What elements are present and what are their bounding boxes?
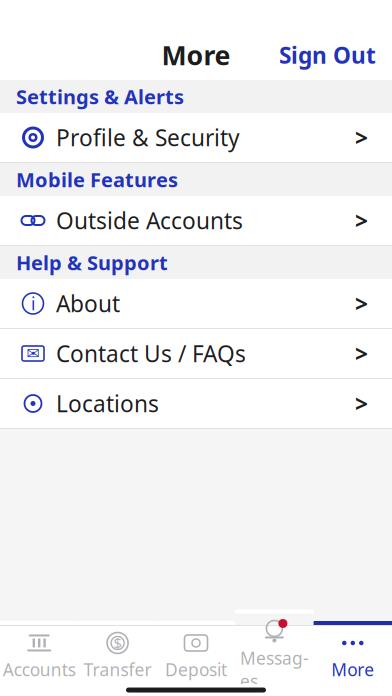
staticText: > [355, 122, 368, 153]
button[interactable]: Messages [235, 626, 314, 684]
staticText: Transfer [84, 658, 152, 681]
button[interactable]: Deposit [157, 626, 235, 684]
staticText: Deposit [165, 658, 227, 681]
button[interactable]: Sign Out [263, 32, 392, 78]
button[interactable]: ✉ [0, 329, 392, 379]
staticText: Settings & Alerts [16, 83, 184, 110]
staticText: Accounts [3, 658, 76, 681]
staticText: > [355, 205, 368, 236]
staticText: More [161, 37, 230, 73]
staticText: Messages [240, 646, 309, 692]
staticText: Help & Support [16, 249, 168, 276]
staticText: > [355, 288, 368, 319]
staticText: $ [114, 633, 122, 653]
button[interactable]: More [314, 626, 392, 684]
staticText: > [355, 338, 368, 369]
staticText: Mobile Features [16, 166, 178, 193]
button[interactable]: i [0, 279, 392, 329]
button[interactable]: Outside Accounts [0, 196, 392, 246]
staticText: i [31, 292, 35, 315]
staticText: ✉ [26, 344, 39, 363]
button[interactable]: Accounts [0, 626, 78, 684]
button[interactable]: $ [78, 626, 157, 684]
staticText: Locations [56, 388, 159, 418]
staticText: Sign Out [279, 40, 376, 70]
button[interactable]: Profile & Security [0, 113, 392, 163]
staticText: About [56, 288, 120, 318]
staticText: More [331, 658, 374, 681]
staticText: > [355, 388, 368, 419]
button[interactable]: Locations [0, 379, 392, 429]
staticText: Outside Accounts [56, 205, 243, 235]
staticText: Profile & Security [56, 122, 240, 152]
staticText: Contact Us / FAQs [56, 338, 246, 368]
